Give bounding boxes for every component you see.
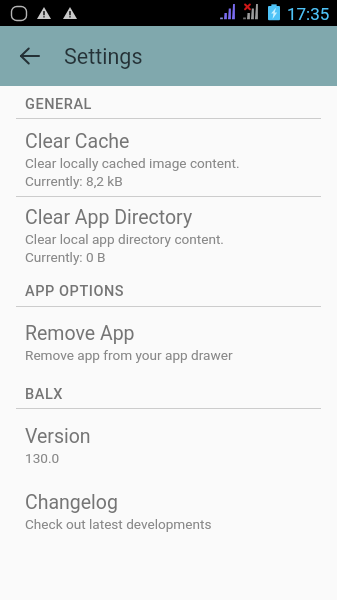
staticText: Clear local app directory content. <box>25 231 224 247</box>
button[interactable] <box>0 200 337 272</box>
staticText: Clear Cache <box>25 130 130 153</box>
button[interactable]: Navigate up <box>5 32 53 80</box>
staticText: Remove App <box>25 322 135 345</box>
staticText: APP OPTIONS <box>25 283 125 300</box>
staticText: Clear locally cached image content. <box>25 155 240 171</box>
button[interactable] <box>0 481 337 537</box>
staticText: GENERAL <box>25 96 92 113</box>
button[interactable] <box>0 415 337 471</box>
staticText: Check out latest developments <box>25 516 212 532</box>
staticText: Version <box>25 425 91 448</box>
staticText: Currently: 8,2 kB <box>25 173 123 189</box>
staticText: Remove app from your app drawer <box>25 347 233 363</box>
button[interactable] <box>0 312 337 368</box>
staticText: Clear App Directory <box>25 206 193 229</box>
staticText: Currently: 0 B <box>25 249 106 265</box>
staticText: Settings <box>64 44 143 69</box>
button[interactable] <box>0 124 337 196</box>
staticText: BALX <box>25 386 64 403</box>
staticText: 17:35 <box>287 4 330 24</box>
staticText: 130.0 <box>25 450 60 466</box>
staticText: Changelog <box>25 491 118 514</box>
